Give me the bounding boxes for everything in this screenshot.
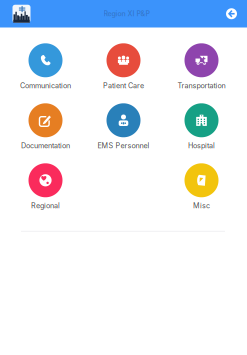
staticText: Misc [193, 201, 210, 210]
staticText: Transportation [177, 81, 225, 90]
button[interactable]: Hospital [162, 103, 240, 163]
staticText: EMS Personnel [97, 141, 149, 150]
button[interactable]: Patient Care [84, 43, 162, 103]
button[interactable]: Regional [6, 163, 84, 223]
button[interactable]: Documentation [6, 103, 84, 163]
staticText: Documentation [21, 141, 70, 150]
button[interactable]: Transportation [162, 43, 240, 103]
button[interactable]: Back [216, 0, 247, 27]
staticText: Region XI P&P [103, 10, 149, 18]
button[interactable]: Chicago EMS [6, 0, 37, 27]
button[interactable]: Misc [162, 163, 240, 223]
staticText: Regional [31, 201, 60, 210]
staticText: Communication [20, 81, 71, 90]
button[interactable]: Communication [6, 43, 84, 103]
button[interactable]: EMS Personnel [84, 103, 162, 163]
staticText: Hospital [188, 141, 215, 150]
staticText: Patient Care [103, 81, 144, 90]
